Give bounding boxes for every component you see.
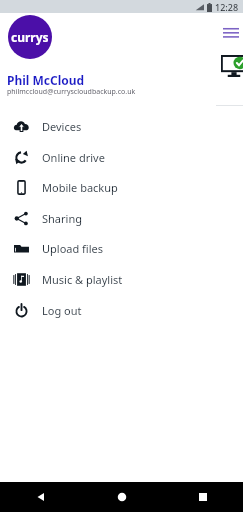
staticText: Phil McCloud <box>7 72 85 88</box>
button[interactable]: Open navigation menu <box>223 27 239 39</box>
button[interactable]: Mobile backup <box>0 172 213 202</box>
staticText: Mobile backup <box>42 180 118 195</box>
button[interactable]: Upload files <box>0 233 213 263</box>
button[interactable]: Devices <box>0 111 213 141</box>
button[interactable] <box>216 48 243 100</box>
button[interactable]: Log out <box>0 295 213 325</box>
button[interactable]: Music & playlist <box>0 264 213 294</box>
staticText: Online drive <box>42 150 105 165</box>
staticText: 12:28 <box>215 1 239 13</box>
staticText: Devices <box>42 119 82 134</box>
button[interactable]: Online drive <box>0 142 213 172</box>
button[interactable]: Recent apps <box>162 482 243 512</box>
staticText: Sharing <box>42 211 82 226</box>
staticText: Log out <box>42 303 82 318</box>
button[interactable]: Back <box>0 482 81 512</box>
button[interactable]: Home <box>81 482 162 512</box>
staticText: currys <box>11 29 49 45</box>
button[interactable]: Sharing <box>0 203 213 233</box>
staticText: philmccloud@curryscloudbackup.co.uk <box>7 87 136 97</box>
staticText: Upload files <box>42 241 104 256</box>
staticText: Music & playlist <box>42 272 123 287</box>
button[interactable]: Currys logo <box>8 15 52 59</box>
